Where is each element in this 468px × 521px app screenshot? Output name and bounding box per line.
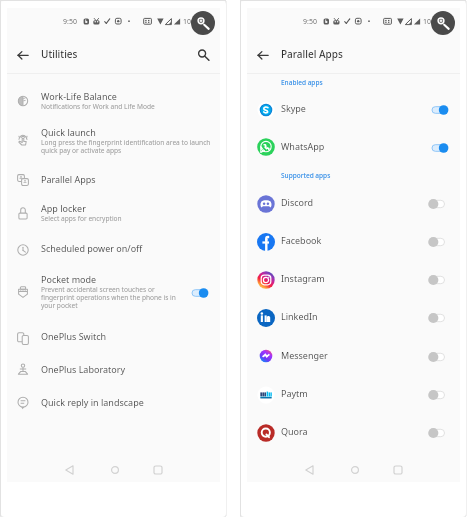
staticText: Discord: [281, 196, 314, 208]
button[interactable]: [247, 414, 460, 452]
button[interactable]: [432, 274, 452, 286]
button[interactable]: [247, 223, 460, 261]
button[interactable]: Back: [252, 44, 273, 65]
button[interactable]: Search: [192, 44, 213, 65]
button[interactable]: [247, 185, 460, 223]
button[interactable]: [247, 261, 460, 299]
button[interactable]: [7, 354, 220, 384]
staticText: OnePlus Switch: [41, 330, 107, 342]
button[interactable]: [247, 337, 460, 375]
staticText: 9:50: [63, 17, 77, 27]
staticText: Quick launch: [41, 126, 96, 138]
button[interactable]: [432, 312, 452, 324]
staticText: WhatsApp: [281, 140, 325, 152]
button[interactable]: [7, 193, 220, 227]
staticText: 100: [183, 17, 196, 27]
staticText: Instagram: [281, 272, 325, 284]
staticText: Prevent accidental screen touches or fin…: [41, 285, 176, 310]
button[interactable]: Zoom in: [431, 11, 455, 35]
staticText: Notifications for Work and Life Mode: [41, 102, 155, 111]
button[interactable]: [7, 387, 220, 417]
button[interactable]: [192, 287, 212, 299]
button[interactable]: Back: [62, 462, 78, 478]
button[interactable]: [7, 164, 220, 194]
button[interactable]: Back: [302, 462, 318, 478]
button[interactable]: [7, 117, 220, 155]
staticText: Scheduled power on/off: [41, 242, 143, 254]
staticText: Quick reply in landscape: [41, 396, 144, 408]
staticText: Parallel Apps: [281, 47, 343, 61]
button[interactable]: [247, 91, 460, 129]
button[interactable]: [432, 351, 452, 363]
staticText: Supported apps: [281, 171, 331, 180]
button[interactable]: Home: [347, 462, 363, 478]
staticText: 100: [423, 17, 436, 27]
staticText: Facebook: [281, 234, 322, 246]
staticText: Messenger: [281, 349, 328, 361]
button[interactable]: Recent apps: [150, 462, 166, 478]
button[interactable]: Recent apps: [390, 462, 406, 478]
staticText: Paytm: [281, 387, 308, 399]
button[interactable]: [247, 128, 460, 166]
staticText: App locker: [41, 202, 86, 214]
staticText: Select apps for encryption: [41, 214, 122, 223]
button[interactable]: [7, 264, 220, 312]
staticText: Pocket mode: [41, 273, 97, 285]
button[interactable]: [432, 389, 452, 401]
button[interactable]: Home: [107, 462, 123, 478]
staticText: LinkedIn: [281, 310, 318, 322]
button[interactable]: [7, 321, 220, 351]
button[interactable]: [7, 81, 220, 115]
staticText: Long press the fingerprint identificatio…: [41, 138, 211, 155]
button[interactable]: [432, 104, 452, 116]
button[interactable]: [7, 233, 220, 263]
button[interactable]: Zoom in: [191, 11, 215, 35]
staticText: Parallel Apps: [41, 173, 96, 185]
button[interactable]: Back: [12, 44, 33, 65]
button[interactable]: [247, 376, 460, 414]
button[interactable]: [247, 299, 460, 337]
staticText: OnePlus Laboratory: [41, 363, 125, 375]
staticText: Skype: [281, 102, 306, 114]
button[interactable]: [432, 142, 452, 154]
button[interactable]: [432, 236, 452, 248]
staticText: Enabled apps: [281, 78, 323, 87]
button[interactable]: [432, 198, 452, 210]
staticText: Quora: [281, 425, 308, 437]
staticText: 9:50: [303, 17, 317, 27]
button[interactable]: [432, 427, 452, 439]
staticText: Utilities: [41, 47, 78, 61]
staticText: Work-Life Balance: [41, 90, 117, 102]
